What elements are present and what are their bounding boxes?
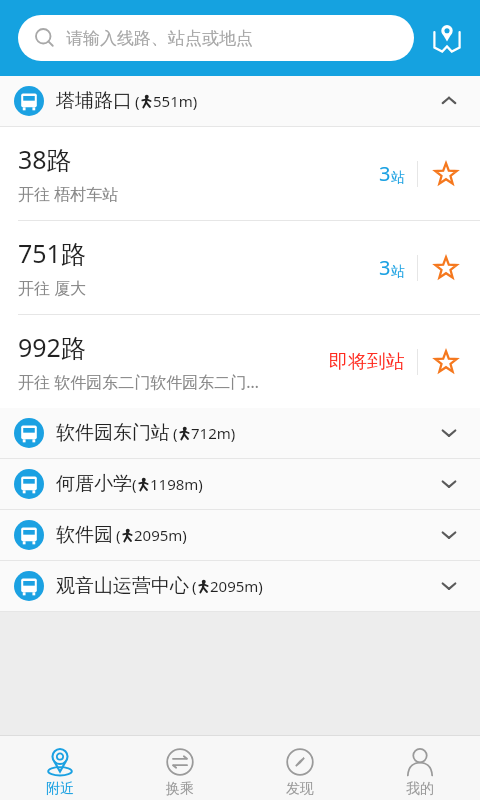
staticText: 即将到站 <box>329 350 405 374</box>
staticText: 塔埔路口 <box>56 89 132 113</box>
staticText: 站 <box>391 263 405 281</box>
button[interactable]: 软件园 <box>0 510 480 560</box>
staticText: ( <box>116 525 121 545</box>
staticText: 38路 <box>18 142 72 176</box>
staticText: 992路 <box>18 330 86 364</box>
staticText: 开往 梧村车站 <box>18 183 119 205</box>
staticText: 开往 厦大 <box>18 277 87 299</box>
staticText: 2095m) <box>134 525 187 545</box>
button[interactable]: 请输入线路、站点或地点 <box>18 15 414 61</box>
button[interactable]: 38路 <box>0 127 480 220</box>
staticText: 751路 <box>18 236 86 270</box>
button[interactable]: 751路 <box>0 221 480 314</box>
button[interactable]: Favorite <box>428 250 464 286</box>
staticText: 何厝小学 <box>56 472 132 496</box>
staticText: ( <box>173 423 178 443</box>
staticText: 请输入线路、站点或地点 <box>66 28 253 49</box>
staticText: 软件园 <box>56 523 113 547</box>
staticText: 换乘 <box>166 780 194 798</box>
staticText: 1198m) <box>150 474 203 494</box>
staticText: 开往 软件园东二门软件园东二门… <box>18 371 259 393</box>
button[interactable]: 软件园东门站 <box>0 408 480 458</box>
staticText: 2095m) <box>210 576 263 596</box>
staticText: 发现 <box>286 780 314 798</box>
staticText: 3 <box>379 160 391 187</box>
button[interactable]: 换乘 <box>120 736 240 800</box>
button[interactable]: 何厝小学 <box>0 459 480 509</box>
button[interactable]: 附近 <box>0 736 120 800</box>
button[interactable]: 992路 <box>0 315 480 408</box>
button[interactable]: 塔埔路口 <box>0 76 480 126</box>
staticText: 观音山运营中心 <box>56 574 189 598</box>
staticText: 软件园东门站 <box>56 421 170 445</box>
staticText: ( <box>135 91 140 111</box>
staticText: 我的 <box>406 780 434 798</box>
staticText: 附近 <box>46 780 74 798</box>
button[interactable]: Map <box>424 15 470 61</box>
staticText: ( <box>132 474 137 494</box>
staticText: 站 <box>391 169 405 187</box>
button[interactable]: 观音山运营中心 <box>0 561 480 611</box>
button[interactable]: Favorite <box>428 156 464 192</box>
button[interactable]: Favorite <box>428 344 464 380</box>
button[interactable]: 我的 <box>360 736 480 800</box>
button[interactable]: 发现 <box>240 736 360 800</box>
staticText: ( <box>192 576 197 596</box>
staticText: 712m) <box>191 423 236 443</box>
staticText: 551m) <box>153 91 198 111</box>
staticText: 3 <box>379 254 391 281</box>
